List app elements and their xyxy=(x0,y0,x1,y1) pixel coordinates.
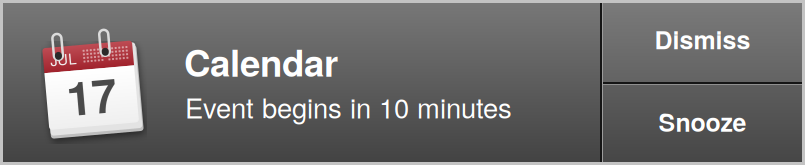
staticText: Snooze xyxy=(658,104,746,139)
staticText: Dismiss xyxy=(654,21,750,57)
staticText: 17 xyxy=(66,63,116,128)
button[interactable]: Dismiss xyxy=(603,3,802,82)
staticText: Calendar xyxy=(184,35,338,88)
staticText: Event begins in 10 minutes xyxy=(185,87,512,126)
staticText: JUL xyxy=(53,46,79,67)
button[interactable]: Snooze xyxy=(603,85,802,162)
